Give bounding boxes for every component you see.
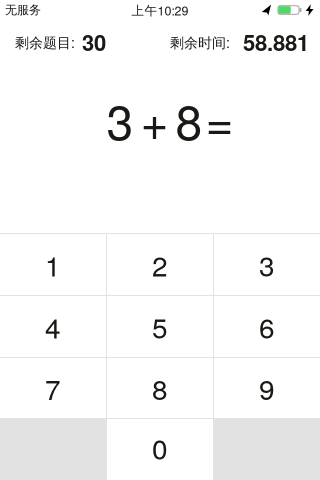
staticText: 3 bbox=[106, 85, 133, 154]
button[interactable]: 7 bbox=[0, 358, 106, 418]
button[interactable]: 2 bbox=[107, 234, 213, 295]
button[interactable]: 9 bbox=[214, 358, 320, 418]
staticText: 上午10:29 bbox=[131, 1, 188, 19]
staticText: 4 bbox=[45, 306, 61, 347]
staticText: 9 bbox=[259, 368, 275, 408]
button[interactable]: 1 bbox=[0, 234, 106, 295]
staticText: 58.881 bbox=[243, 26, 309, 58]
button[interactable]: 6 bbox=[214, 296, 320, 357]
staticText: 3 bbox=[259, 244, 275, 285]
staticText: 5 bbox=[152, 306, 168, 347]
button[interactable]: 8 bbox=[107, 358, 213, 418]
staticText: 无服务 bbox=[5, 2, 41, 17]
button[interactable]: 0 bbox=[107, 419, 213, 480]
staticText: 8 bbox=[175, 85, 202, 154]
staticText: 2 bbox=[152, 244, 168, 285]
staticText: 8 bbox=[152, 368, 168, 408]
staticText: = bbox=[205, 85, 233, 154]
staticText: 6 bbox=[259, 306, 275, 347]
staticText: 1 bbox=[45, 244, 61, 285]
staticText: 0 bbox=[152, 427, 168, 468]
staticText: 剩余时间: bbox=[170, 32, 230, 52]
staticText: 7 bbox=[45, 368, 61, 408]
staticText: + bbox=[140, 85, 168, 154]
staticText: 剩余题目: bbox=[15, 32, 75, 52]
button[interactable]: 5 bbox=[107, 296, 213, 357]
button[interactable]: 3 bbox=[214, 234, 320, 295]
button[interactable]: 4 bbox=[0, 296, 106, 357]
staticText: 30 bbox=[82, 26, 106, 58]
